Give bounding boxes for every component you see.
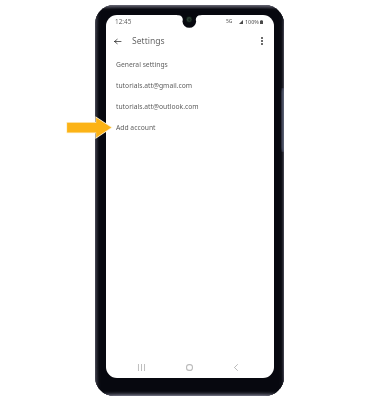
staticText: tutorials.att@outlook.com [116,102,199,111]
button[interactable]: tutorials.att@gmail.com [106,75,274,96]
staticText: Add account [116,123,156,132]
staticText: General settings [116,60,168,69]
staticText: 5G [226,18,233,25]
button[interactable]: Home [180,357,198,377]
button[interactable]: tutorials.att@outlook.com [106,96,274,117]
button[interactable]: General settings [106,54,274,75]
staticText: tutorials.att@gmail.com [116,81,193,90]
staticText: 100% [245,18,259,25]
button[interactable]: Back [227,357,245,377]
button[interactable]: Back [108,32,126,50]
staticText: 12:45 [115,17,132,26]
button[interactable]: Recent apps [132,357,150,377]
button[interactable]: Add account [106,117,274,138]
button[interactable]: More options [254,33,270,49]
staticText: Settings [132,35,165,47]
